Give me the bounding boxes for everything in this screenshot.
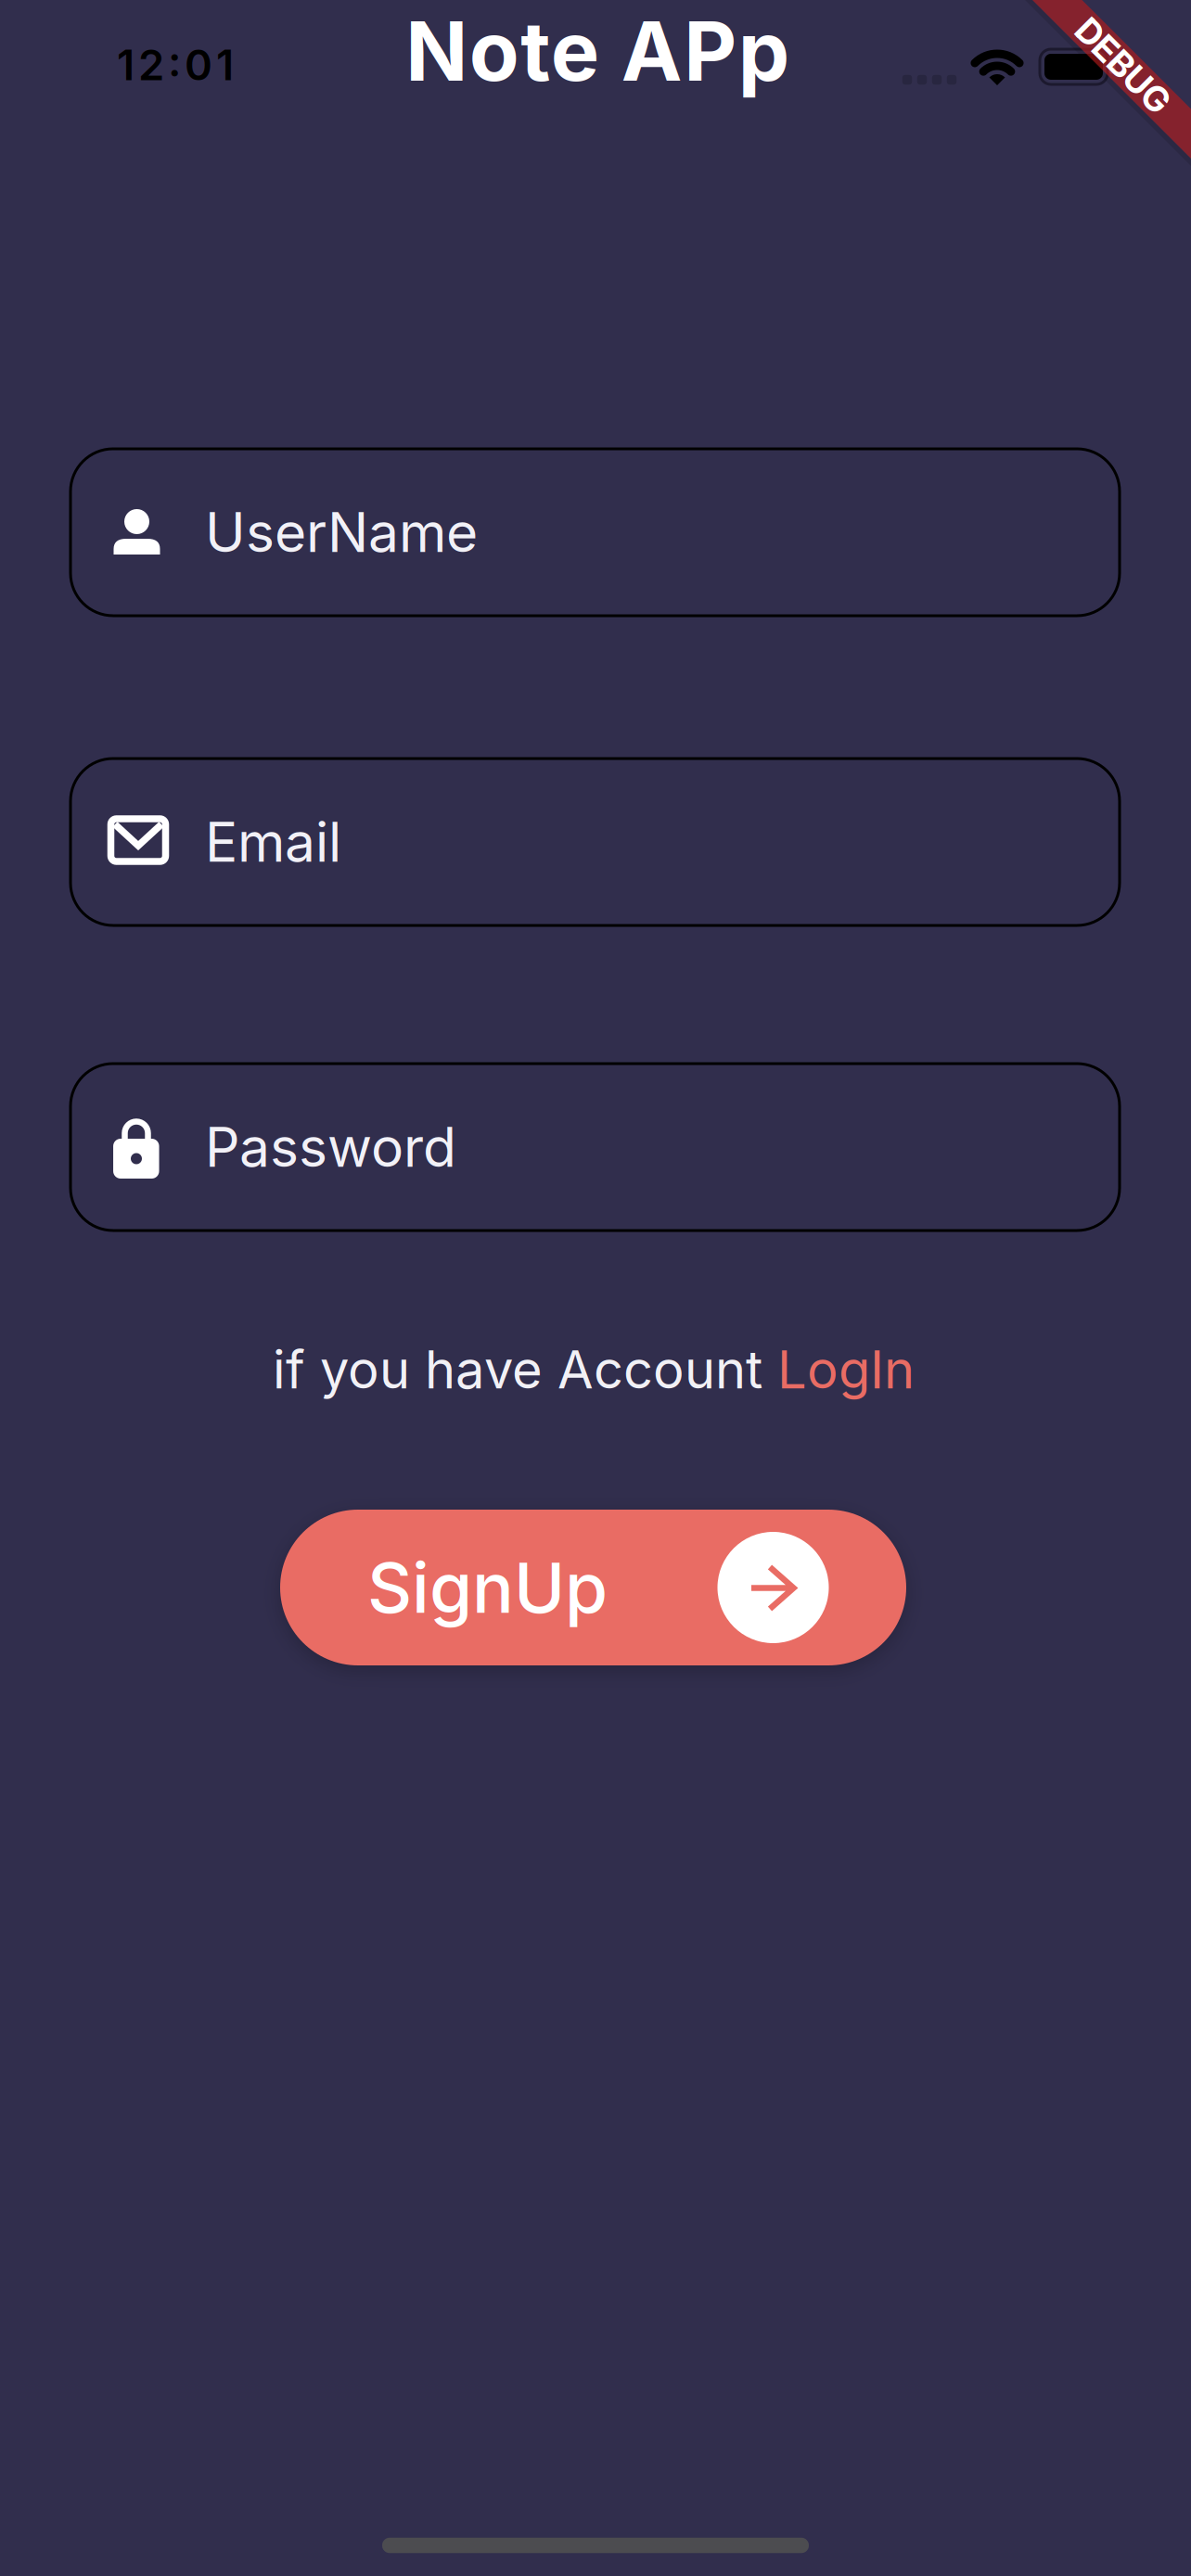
staticText: Password	[205, 1115, 456, 1179]
button[interactable]	[70, 449, 1120, 616]
staticText: DEBUG	[1064, 45, 1183, 86]
staticText: Email	[205, 810, 341, 874]
button[interactable]	[70, 1064, 1120, 1231]
button[interactable]: SignUp	[280, 1510, 906, 1665]
staticText: 12:01	[117, 40, 234, 90]
staticText: Note APp	[406, 3, 789, 99]
button[interactable]: if you have Account	[273, 1339, 915, 1400]
staticText: if you have Account	[273, 1339, 777, 1400]
staticText: UserName	[205, 500, 478, 564]
staticText: SignUp	[367, 1547, 608, 1628]
staticText: LogIn	[777, 1339, 915, 1400]
button[interactable]	[70, 759, 1120, 925]
